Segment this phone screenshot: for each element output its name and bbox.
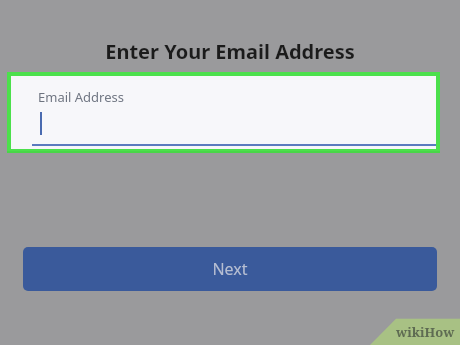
button[interactable]: Next xyxy=(23,247,437,291)
staticText: wikiHow xyxy=(396,323,455,341)
other: field shadow xyxy=(7,152,440,154)
staticText: Next xyxy=(212,258,248,280)
staticText: Email Address xyxy=(38,88,124,106)
button[interactable]: Email Address xyxy=(7,72,440,153)
staticText: Enter Your Email Address xyxy=(105,38,355,64)
